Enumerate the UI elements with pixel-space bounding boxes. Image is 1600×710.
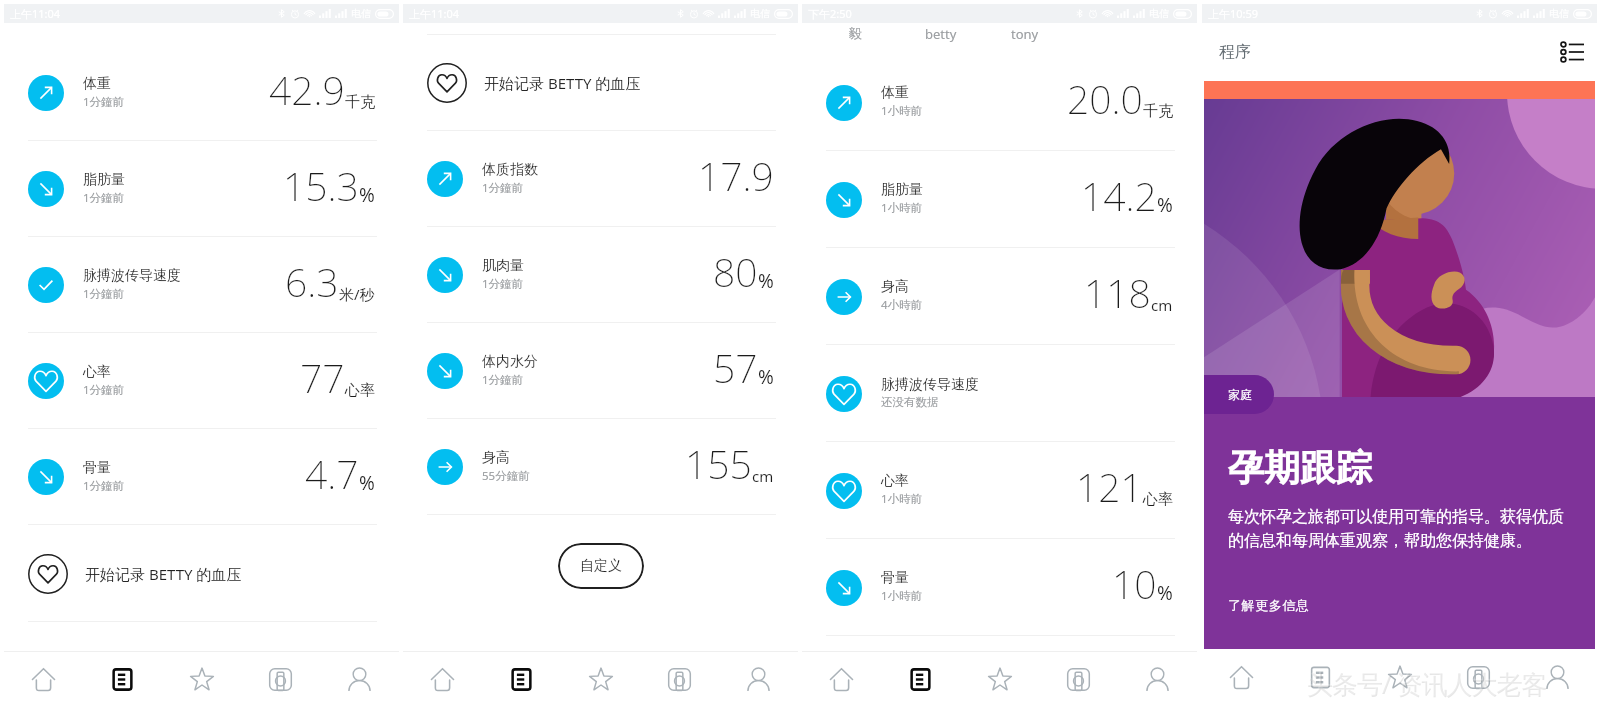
staticText: 脂肪量 bbox=[881, 181, 923, 199]
staticText: betty bbox=[925, 25, 957, 43]
button[interactable]: 体质指数 bbox=[403, 131, 798, 227]
button[interactable]: Options list bbox=[1555, 35, 1589, 69]
staticText: 55分鐘前 bbox=[482, 468, 530, 484]
button[interactable]: Records bbox=[482, 652, 561, 710]
staticText: 1小時前 bbox=[881, 588, 923, 604]
staticText: 身高 bbox=[482, 449, 510, 467]
staticText: 体质指数 bbox=[482, 161, 538, 179]
staticText: 家庭 bbox=[1228, 387, 1252, 402]
staticText: 脉搏波传导速度 bbox=[83, 267, 181, 285]
button[interactable]: Profile bbox=[719, 652, 798, 710]
staticText: 上午11:04 bbox=[409, 6, 460, 21]
staticText: 身高 bbox=[881, 278, 909, 296]
button[interactable]: 脂肪量 bbox=[802, 151, 1197, 248]
staticText: 4.7 bbox=[305, 447, 359, 500]
staticText: 电信 bbox=[750, 7, 770, 20]
staticText: 心率 bbox=[345, 381, 375, 400]
button[interactable]: 开始记录 BETTY 的血压 bbox=[4, 525, 399, 622]
staticText: % bbox=[1157, 192, 1173, 218]
button[interactable]: 了解更多信息 bbox=[1228, 597, 1310, 613]
staticText: 电信 bbox=[351, 7, 371, 20]
staticText: 电信 bbox=[1149, 7, 1169, 20]
staticText: 57 bbox=[713, 341, 758, 394]
button[interactable]: Profile bbox=[320, 652, 399, 710]
staticText: 1小時前 bbox=[881, 491, 923, 507]
staticText: 骨量 bbox=[881, 569, 909, 587]
button[interactable]: Devices bbox=[1439, 650, 1518, 708]
staticText: 体内水分 bbox=[482, 353, 538, 371]
button[interactable]: Profile bbox=[1118, 652, 1197, 710]
button[interactable]: Home bbox=[1202, 650, 1281, 708]
button[interactable]: Records bbox=[881, 652, 960, 710]
staticText: 电信 bbox=[1549, 7, 1569, 20]
staticText: 1分鐘前 bbox=[482, 372, 524, 388]
staticText: cm bbox=[752, 466, 774, 486]
button[interactable]: 骨量 bbox=[4, 429, 399, 525]
staticText: 还没有数据 bbox=[881, 395, 939, 409]
button[interactable]: Home bbox=[802, 652, 881, 710]
button[interactable]: Devices bbox=[1039, 652, 1118, 710]
button[interactable]: 心率 bbox=[802, 442, 1197, 539]
button[interactable]: Devices bbox=[640, 652, 719, 710]
button[interactable]: Home bbox=[4, 652, 83, 710]
button[interactable]: 肌肉量 bbox=[403, 227, 798, 323]
button[interactable]: 心率 bbox=[4, 333, 399, 429]
button[interactable]: Devices bbox=[241, 652, 320, 710]
button[interactable]: Home bbox=[403, 652, 482, 710]
staticText: 上午10:59 bbox=[1208, 6, 1259, 21]
button[interactable]: 脉搏波传导速度 bbox=[4, 237, 399, 333]
staticText: 心率 bbox=[1143, 490, 1173, 509]
button[interactable]: Favourites bbox=[960, 652, 1039, 710]
staticText: 脉搏波传导速度 bbox=[881, 376, 979, 394]
staticText: 千克 bbox=[1143, 102, 1173, 121]
staticText: 体重 bbox=[83, 75, 111, 93]
staticText: 80 bbox=[713, 245, 758, 298]
button[interactable]: 身高 bbox=[403, 419, 798, 515]
staticText: 1小時前 bbox=[881, 103, 923, 119]
staticText: 17.9 bbox=[698, 149, 774, 202]
staticText: 上午11:04 bbox=[10, 6, 61, 21]
staticText: 6.3 bbox=[285, 255, 339, 308]
staticText: 1分鐘前 bbox=[83, 286, 125, 302]
button[interactable]: Favourites bbox=[561, 652, 640, 710]
button[interactable]: 骨量 bbox=[802, 539, 1197, 636]
staticText: 了解更多信息 bbox=[1228, 597, 1310, 613]
button[interactable]: Favourites bbox=[162, 652, 241, 710]
button[interactable]: Records bbox=[1281, 650, 1360, 708]
button[interactable]: 开始记录 BETTY 的血压 bbox=[403, 35, 798, 131]
staticText: % bbox=[1157, 580, 1173, 606]
staticText: 121 bbox=[1076, 460, 1143, 513]
staticText: 体重 bbox=[881, 84, 909, 102]
button[interactable]: Favourites bbox=[1360, 650, 1439, 708]
staticText: 15.3 bbox=[283, 159, 359, 212]
button[interactable]: 脉搏波传导速度 bbox=[802, 345, 1197, 442]
staticText: 千克 bbox=[345, 93, 375, 112]
staticText: 1分鐘前 bbox=[482, 180, 524, 196]
staticText: cm bbox=[1151, 295, 1173, 315]
button[interactable]: Profile bbox=[1518, 650, 1597, 708]
staticText: 1分鐘前 bbox=[482, 276, 524, 292]
staticText: 下午2:50 bbox=[808, 6, 852, 21]
button[interactable]: 体重 bbox=[4, 45, 399, 141]
button[interactable]: Records bbox=[83, 652, 162, 710]
staticText: 开始记录 BETTY 的血压 bbox=[484, 73, 641, 93]
staticText: 1分鐘前 bbox=[83, 94, 125, 110]
staticText: % bbox=[359, 182, 375, 208]
button[interactable]: 体重 bbox=[802, 54, 1197, 151]
staticText: 开始记录 BETTY 的血压 bbox=[85, 564, 242, 584]
staticText: 自定义 bbox=[580, 557, 622, 575]
staticText: 77 bbox=[300, 351, 345, 404]
button[interactable]: 家庭 bbox=[1204, 375, 1274, 414]
staticText: 1分鐘前 bbox=[83, 382, 125, 398]
staticText: 肌肉量 bbox=[482, 257, 524, 275]
staticText: % bbox=[758, 268, 774, 294]
button[interactable]: 脂肪量 bbox=[4, 141, 399, 237]
staticText: 心率 bbox=[881, 472, 909, 490]
staticText: 20.0 bbox=[1067, 72, 1143, 125]
staticText: 118 bbox=[1084, 266, 1151, 319]
staticText: 4小時前 bbox=[881, 297, 923, 313]
button[interactable]: 体内水分 bbox=[403, 323, 798, 419]
button[interactable]: 身高 bbox=[802, 248, 1197, 345]
button[interactable]: 自定义 bbox=[558, 543, 644, 589]
staticText: 10 bbox=[1112, 557, 1157, 610]
